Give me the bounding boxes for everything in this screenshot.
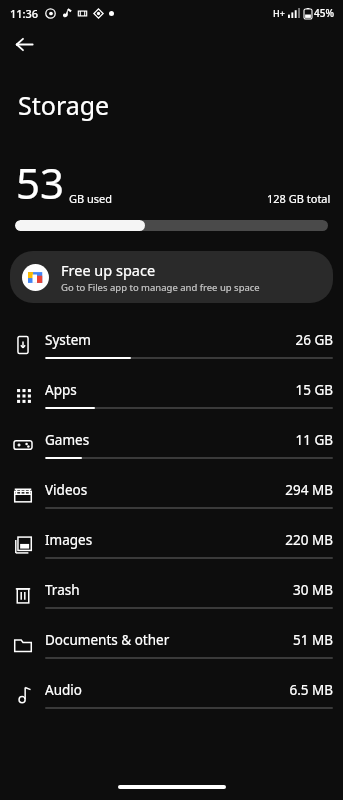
staticText: Go to Files app to manage and free up sp… [61, 281, 260, 294]
staticText: Games [45, 431, 295, 449]
staticText: 294 MB [285, 481, 333, 499]
staticText: Apps [45, 381, 295, 399]
staticText: 30 MB [293, 581, 333, 599]
staticText: 128 GB total [267, 191, 331, 206]
staticText: Documents & other [45, 631, 293, 649]
button[interactable]: Apps [0, 370, 343, 420]
staticText: 220 MB [285, 531, 333, 549]
staticText: System [45, 331, 295, 349]
button[interactable]: Back [6, 26, 42, 62]
button[interactable]: Free up space [10, 251, 333, 303]
staticText: 6.5 MB [289, 681, 333, 699]
staticText: 51 MB [293, 631, 333, 649]
staticText: Storage [18, 88, 110, 122]
button[interactable]: System [0, 320, 343, 370]
staticText: H+ [273, 7, 285, 19]
button[interactable]: Audio [0, 670, 343, 720]
staticText: 26 GB [295, 331, 333, 349]
staticText: Audio [45, 681, 289, 699]
button[interactable]: Trash [0, 570, 343, 620]
button[interactable]: Videos [0, 470, 343, 520]
staticText: 53 [16, 154, 65, 211]
button[interactable]: Images [0, 520, 343, 570]
staticText: 45% [314, 6, 334, 20]
staticText: Videos [45, 481, 285, 499]
button[interactable]: Games [0, 420, 343, 470]
staticText: Trash [45, 581, 293, 599]
staticText: Free up space [61, 260, 156, 280]
staticText: Images [45, 531, 285, 549]
staticText: 15 GB [295, 381, 333, 399]
staticText: 11:36 [10, 6, 39, 21]
staticText: 11 GB [295, 431, 333, 449]
staticText: GB used [69, 191, 113, 206]
button[interactable]: Documents & other [0, 620, 343, 670]
